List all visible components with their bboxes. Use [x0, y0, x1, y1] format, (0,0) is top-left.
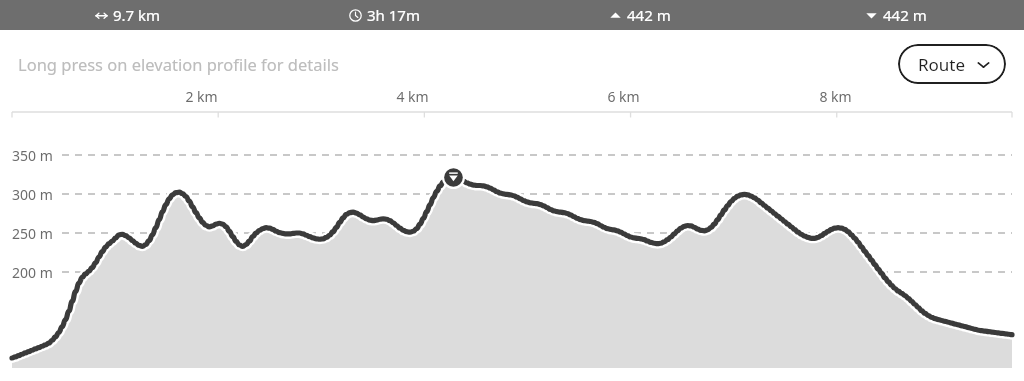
staticText: 442 m [627, 5, 671, 25]
staticText: 4 km [396, 87, 429, 106]
staticText: 8 km [819, 87, 852, 106]
button[interactable]: Descent [768, 0, 1024, 30]
staticText: 442 m [883, 5, 927, 25]
staticText: 9.7 km [113, 5, 161, 25]
staticText: 3h 17m [367, 5, 420, 25]
staticText: 250 m [12, 224, 53, 243]
staticText: 6 km [607, 87, 640, 106]
other: Descent [865, 9, 878, 22]
staticText: 2 km [185, 87, 218, 106]
other: Duration [349, 9, 362, 22]
button[interactable]: Route [898, 44, 1006, 84]
button[interactable]: Elevation profile [0, 98, 1024, 381]
staticText: Route [918, 53, 966, 76]
staticText: Long press on elevation profile for deta… [18, 53, 339, 75]
staticText: 350 m [12, 146, 53, 165]
other: Ascent [609, 9, 622, 22]
staticText: 300 m [12, 185, 53, 204]
other: Distance [95, 9, 108, 22]
button[interactable]: Ascent [512, 0, 768, 30]
button[interactable]: Duration [256, 0, 512, 30]
button[interactable]: Distance [0, 0, 256, 30]
staticText: 200 m [12, 263, 53, 282]
